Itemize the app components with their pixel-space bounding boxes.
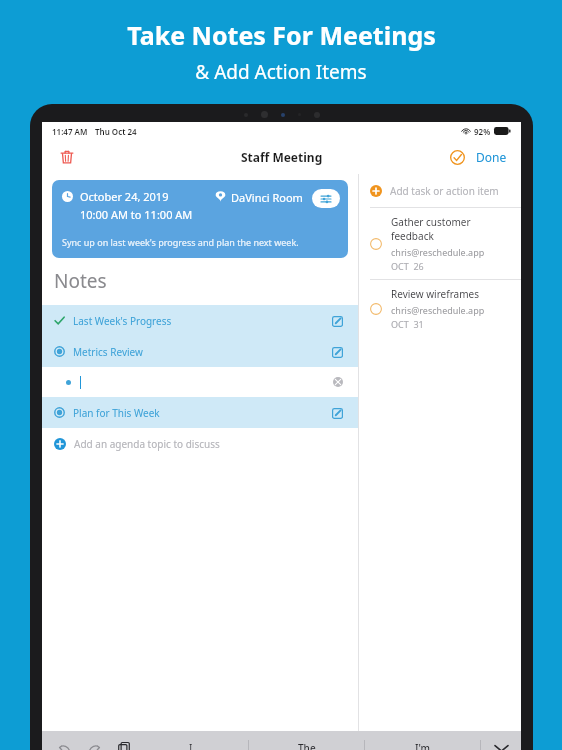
- staticText: Sync up on last week's progress and plan…: [62, 236, 299, 248]
- staticText: chris@reschedule.app: [391, 304, 485, 316]
- button[interactable]: Edit Last Week's Progress: [328, 312, 346, 330]
- button[interactable]: Clear text: [42, 367, 358, 397]
- staticText: Done: [476, 149, 507, 165]
- staticText: 10:00 AM to 11:00 AM: [80, 207, 193, 222]
- button[interactable]: October 24, 2019: [52, 180, 348, 258]
- button[interactable]: Paste: [114, 738, 134, 750]
- staticText: Notes: [54, 268, 107, 294]
- staticText: Last Week's Progress: [73, 314, 172, 328]
- button[interactable]: Add an agenda topic to discuss: [42, 428, 358, 459]
- staticText: Review wireframes: [391, 287, 479, 301]
- staticText: chris@reschedule.app: [391, 246, 485, 258]
- button[interactable]: Edit Plan for This Week: [328, 404, 346, 422]
- staticText: Staff Meeting: [241, 149, 323, 165]
- staticText: DaVinci Room: [231, 190, 303, 205]
- staticText: 11:47 AM: [52, 126, 88, 137]
- button[interactable]: Done: [472, 145, 511, 169]
- button[interactable]: The: [249, 731, 364, 750]
- button[interactable]: Metrics Review: [42, 336, 358, 367]
- staticText: OCT 31: [391, 318, 424, 330]
- staticText: Add task or action item: [390, 184, 499, 198]
- staticText: Metrics Review: [73, 345, 143, 359]
- staticText: I: [189, 741, 193, 750]
- button[interactable]: Clear text: [330, 374, 346, 390]
- button[interactable]: Edit Metrics Review: [328, 343, 346, 361]
- button[interactable]: I'm: [365, 731, 480, 750]
- button[interactable]: Meeting options: [312, 189, 340, 208]
- button[interactable]: I: [134, 731, 248, 750]
- staticText: October 24, 2019: [80, 189, 169, 204]
- button[interactable]: Add task or action item: [359, 174, 521, 207]
- staticText: Thu Oct 24: [95, 126, 137, 137]
- button[interactable]: Undo: [54, 738, 74, 750]
- staticText: Add an agenda topic to discuss: [74, 437, 220, 451]
- staticText: OCT 26: [391, 260, 424, 272]
- button[interactable]: Hide keyboard: [481, 731, 521, 750]
- staticText: & Add Action Items: [195, 59, 367, 85]
- staticText: Take Notes For Meetings: [127, 18, 436, 52]
- button[interactable]: Gather customer feedback: [359, 208, 521, 279]
- staticText: I'm: [415, 741, 431, 750]
- button[interactable]: Redo: [84, 738, 104, 750]
- staticText: The: [298, 741, 316, 750]
- staticText: Gather customer feedback: [391, 215, 513, 243]
- button[interactable]: Mark complete: [446, 146, 468, 168]
- button[interactable]: Last Week's Progress: [42, 305, 358, 336]
- staticText: 92%: [474, 126, 491, 137]
- button[interactable]: Delete meeting: [54, 144, 80, 170]
- button[interactable]: Plan for This Week: [42, 397, 358, 428]
- staticText: Plan for This Week: [73, 406, 160, 420]
- button[interactable]: Review wireframes: [359, 280, 521, 337]
